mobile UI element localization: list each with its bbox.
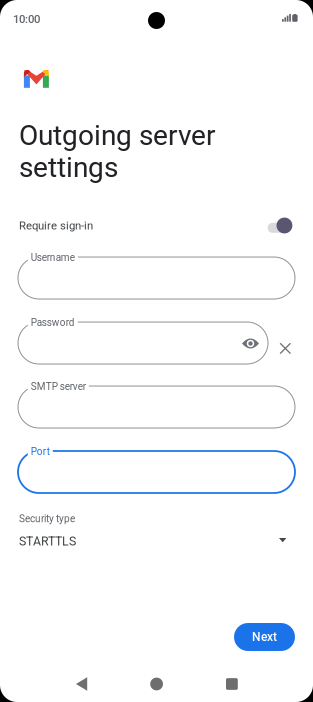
staticText: SMTP server xyxy=(31,381,86,392)
staticText: Password xyxy=(31,317,75,328)
button[interactable]: Recent apps xyxy=(212,668,252,700)
staticText: Require sign-in xyxy=(19,219,93,232)
button[interactable]: Next xyxy=(234,623,295,651)
staticText: Security type xyxy=(19,513,75,525)
button[interactable]: Security type xyxy=(0,506,313,554)
staticText: Port xyxy=(31,446,50,457)
staticText: Next xyxy=(252,630,277,644)
staticText: Outgoing server xyxy=(19,119,215,152)
staticText: Username xyxy=(31,252,75,263)
staticText: STARTTLS xyxy=(19,534,76,548)
button[interactable]: Require sign-in xyxy=(268,215,292,236)
staticText: 10:00 xyxy=(13,12,40,26)
button[interactable]: Back xyxy=(62,668,102,700)
staticText: settings xyxy=(19,151,118,184)
button[interactable]: Clear password xyxy=(273,336,297,360)
button[interactable]: Home xyxy=(137,668,177,700)
